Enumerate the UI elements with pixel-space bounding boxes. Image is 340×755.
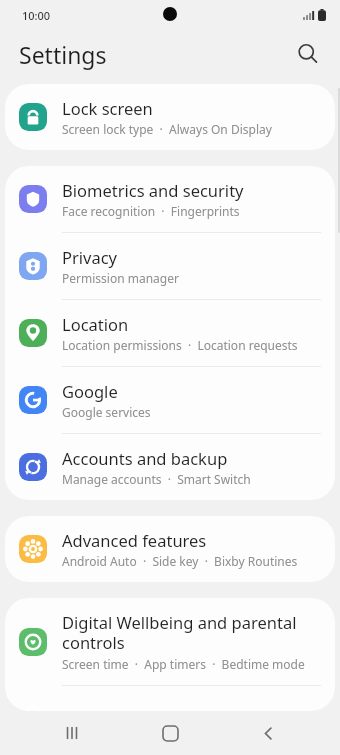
staticText: Android Auto · Side key · Bixby Routines [62,553,298,569]
button[interactable]: Home [144,711,196,755]
staticText: Accounts and backup [62,447,228,469]
button[interactable]: Accounts and backup [5,434,335,500]
staticText: Location permissions · Location requests [62,337,298,353]
staticText: Google services [62,404,151,420]
staticText: Face recognition · Fingerprints [62,203,240,219]
button[interactable]: Recents [46,711,98,755]
button[interactable]: Advanced features [5,516,335,582]
staticText: 10:00 [22,8,51,23]
staticText: Screen lock type · Always On Display [62,121,272,137]
staticText: Manage accounts · Smart Switch [62,471,251,487]
button[interactable]: Digital Wellbeing and parental controls [5,598,335,686]
staticText: Privacy [62,246,118,268]
staticText: Digital Wellbeing and parental controls [62,611,321,654]
staticText: Advanced features [62,529,207,551]
button[interactable]: Biometrics and security [5,166,335,233]
staticText: Google [62,380,118,402]
button[interactable]: Lock screen [5,84,335,150]
button[interactable]: Privacy [5,233,335,300]
button[interactable]: Search [288,34,328,74]
staticText: Permission manager [62,270,179,286]
button[interactable]: Location [5,300,335,367]
staticText: Lock screen [62,97,153,119]
button[interactable]: Google [5,367,335,434]
staticText: Location [62,313,129,335]
staticText: Screen time · App timers · Bedtime mode [62,656,305,672]
button[interactable]: Back [242,711,294,755]
staticText: Settings [19,39,107,70]
staticText: Biometrics and security [62,179,244,201]
